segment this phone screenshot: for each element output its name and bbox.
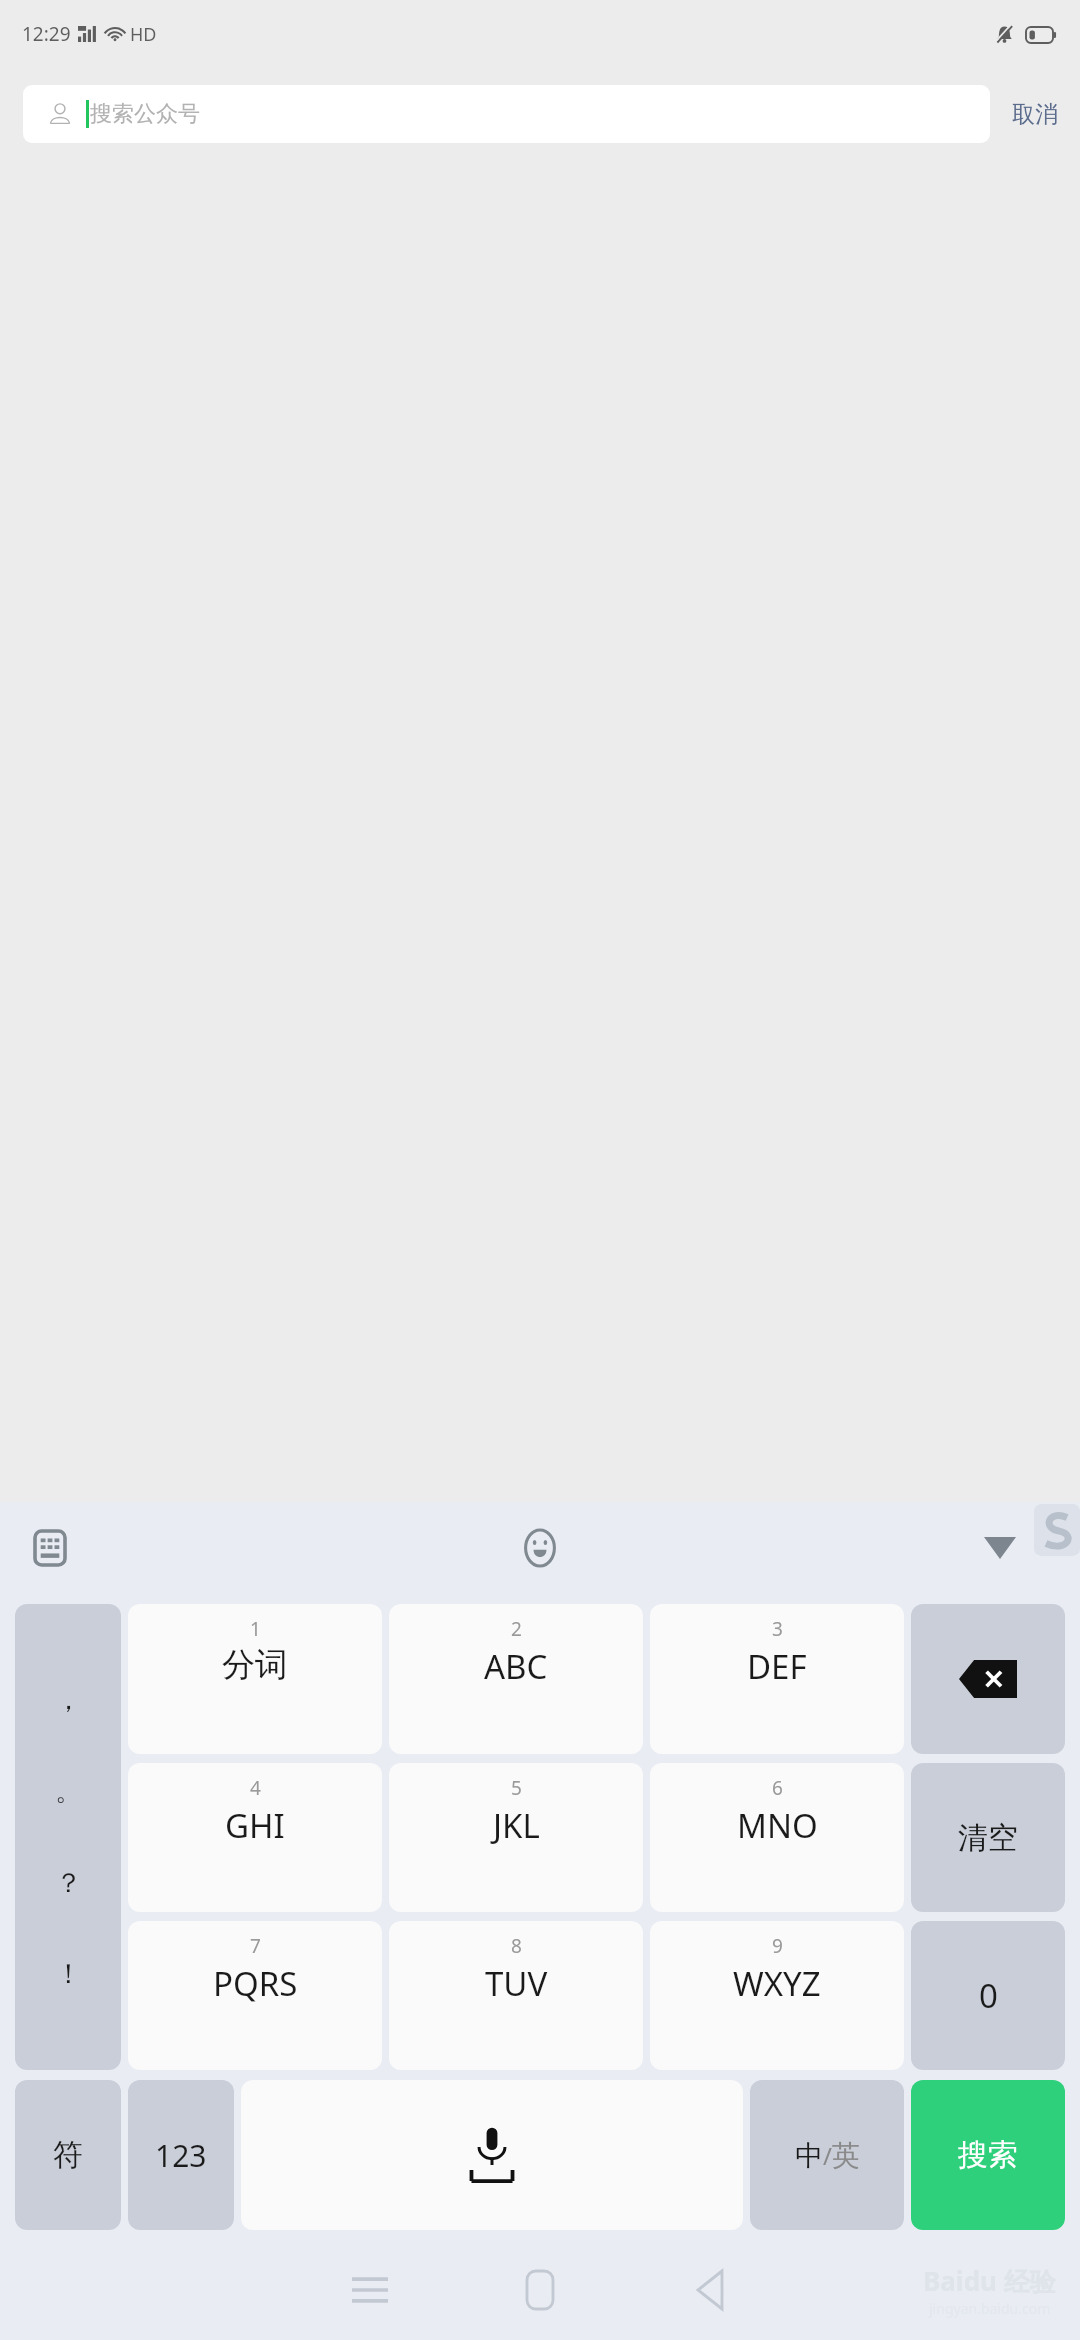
staticText: 0 <box>979 1973 998 2018</box>
staticText: 中 <box>795 2138 823 2173</box>
button[interactable]: Recents <box>330 2250 410 2330</box>
staticText: 分词 <box>222 1644 288 1686</box>
staticText: 清空 <box>958 1819 1018 1857</box>
button[interactable]: 2 <box>389 1604 643 1754</box>
staticText: WXYZ <box>733 1961 821 2006</box>
staticText: ， <box>55 1683 82 1717</box>
staticText: Baidu 经验 <box>923 2263 1056 2299</box>
staticText: HD <box>130 22 157 47</box>
staticText: 取消 <box>1012 100 1058 129</box>
button[interactable]: 1 <box>128 1604 382 1754</box>
staticText: MNO <box>737 1803 818 1848</box>
button[interactable]: 9 <box>650 1921 904 2070</box>
button[interactable]: ， <box>15 1604 121 2070</box>
staticText: 4 <box>250 1775 261 1801</box>
staticText: / <box>823 2139 832 2172</box>
staticText: 12:29 <box>22 21 71 47</box>
button[interactable]: Emoji <box>510 1518 570 1578</box>
staticText: 1 <box>250 1616 261 1642</box>
staticText: ABC <box>484 1644 548 1689</box>
staticText: 3 <box>772 1616 783 1642</box>
staticText: 搜索 <box>958 2136 1018 2174</box>
staticText: 符 <box>53 2136 83 2174</box>
staticText: JKL <box>493 1803 540 1848</box>
staticText: DEF <box>747 1644 807 1689</box>
button[interactable]: 4 <box>128 1763 382 1912</box>
staticText: 6 <box>772 1775 783 1801</box>
staticText: 搜索公众号 <box>90 100 200 128</box>
button[interactable]: 搜索公众号 <box>23 85 990 143</box>
staticText: 。 <box>55 1774 82 1808</box>
staticText: 英 <box>832 2138 860 2173</box>
button[interactable]: 搜索 <box>911 2080 1065 2230</box>
button[interactable]: 取消 <box>990 85 1080 143</box>
staticText: 7 <box>250 1933 261 1959</box>
staticText: ？ <box>55 1866 82 1900</box>
button[interactable]: 6 <box>650 1763 904 1912</box>
staticText: 9 <box>772 1933 783 1959</box>
button[interactable]: 中 <box>750 2080 904 2230</box>
button[interactable]: Backspace <box>911 1604 1065 1754</box>
button[interactable]: 5 <box>389 1763 643 1912</box>
staticText: 8 <box>511 1933 522 1959</box>
staticText: TUV <box>485 1961 548 2006</box>
button[interactable]: 清空 <box>911 1763 1065 1912</box>
button[interactable]: Hide keyboard <box>972 1520 1028 1576</box>
button[interactable]: 符 <box>15 2080 121 2230</box>
button[interactable]: Keyboard layout <box>22 1520 78 1576</box>
button[interactable]: 7 <box>128 1921 382 2070</box>
button[interactable]: 8 <box>389 1921 643 2070</box>
staticText: 5 <box>511 1775 522 1801</box>
button[interactable]: 0 <box>911 1921 1065 2070</box>
staticText: 2 <box>511 1616 522 1642</box>
button[interactable]: Home <box>500 2250 580 2330</box>
staticText: ！ <box>55 1957 82 1991</box>
button[interactable]: 3 <box>650 1604 904 1754</box>
button[interactable]: Space / Voice input <box>241 2080 743 2230</box>
staticText: PQRS <box>213 1961 298 2006</box>
button[interactable]: 123 <box>128 2080 234 2230</box>
staticText: 123 <box>155 2135 207 2176</box>
staticText: GHI <box>225 1803 285 1848</box>
button[interactable]: Back <box>670 2250 750 2330</box>
